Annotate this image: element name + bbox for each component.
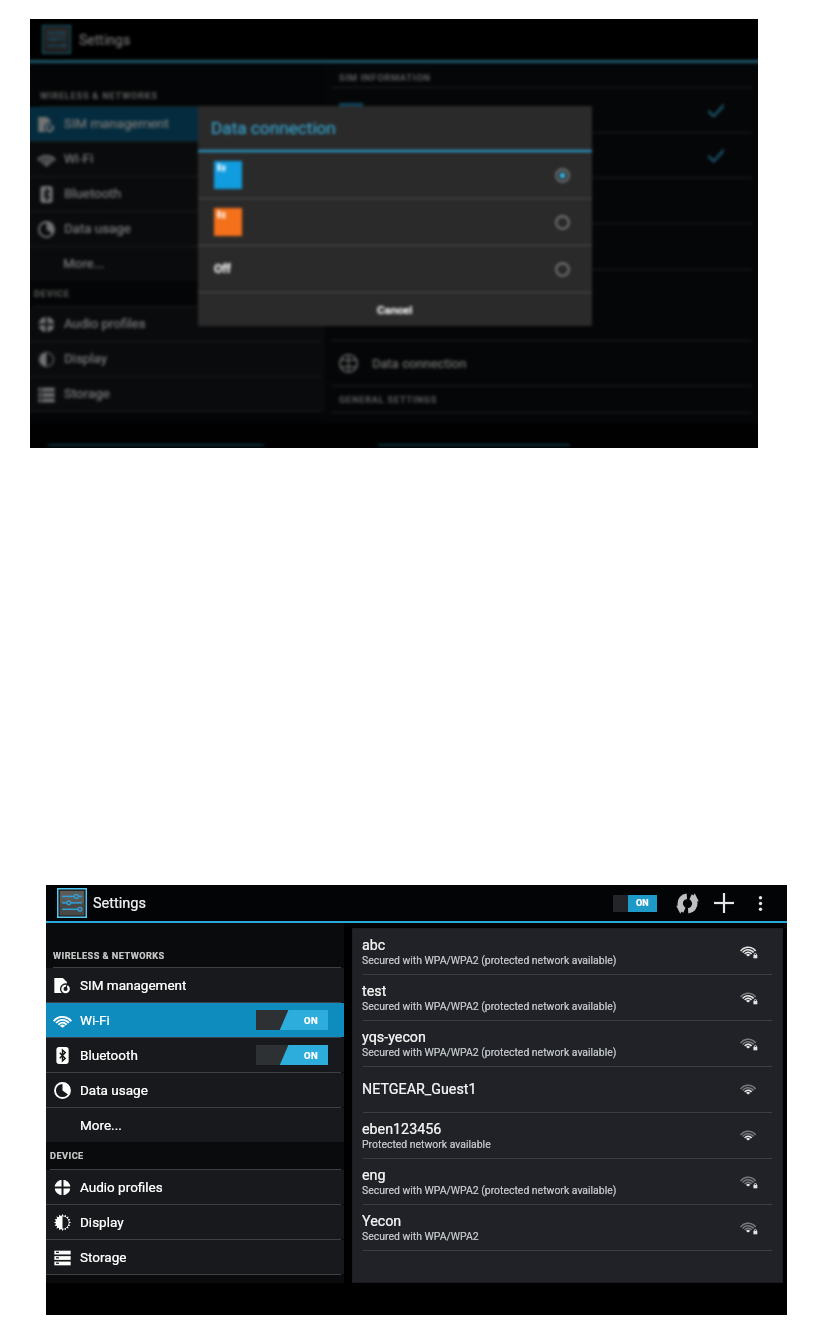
button[interactable]: More options — [745, 888, 775, 918]
staticText: SIM INFORMATION — [339, 72, 431, 83]
button[interactable]: NETGEAR_Guest1 — [353, 1067, 782, 1112]
staticText: Secured with WPA/WPA2 (protected network… — [362, 954, 617, 966]
button[interactable]: Off — [198, 246, 592, 292]
button[interactable]: More... — [46, 1108, 344, 1142]
button[interactable]: Data usage — [46, 1073, 344, 1107]
button[interactable]: SIM management — [46, 968, 344, 1002]
staticText: Wi-Fi — [64, 151, 94, 167]
button[interactable]: eng — [353, 1159, 782, 1204]
staticText: Audio profiles — [64, 316, 146, 332]
staticText: Audio profiles — [80, 1179, 163, 1195]
staticText: test — [362, 983, 387, 1000]
staticText: Settings — [79, 32, 131, 48]
button[interactable]: SIM card — [325, 133, 758, 177]
staticText: ON — [304, 1015, 319, 1026]
button[interactable]: WPS — [672, 888, 702, 918]
button[interactable]: Display — [46, 1205, 344, 1239]
staticText: WIRELESS & NETWORKS — [40, 90, 158, 101]
button[interactable]: Wi-Fi — [30, 142, 325, 176]
staticText: ON — [636, 898, 649, 909]
button[interactable]: Audio profiles — [46, 1170, 344, 1204]
staticText: Data usage — [80, 1082, 148, 1098]
button[interactable]: SIM 1 — [198, 152, 592, 198]
staticText: Secured with WPA/WPA2 — [362, 1230, 479, 1242]
staticText: yqs-yecon — [362, 1029, 426, 1046]
staticText: SIM management — [80, 977, 187, 993]
button[interactable]: Data connection — [325, 341, 758, 385]
button[interactable]: Audio profiles — [30, 307, 325, 341]
button[interactable]: SIM card — [325, 88, 758, 132]
staticText: Storage — [80, 1249, 127, 1265]
staticText: Secured with WPA/WPA2 (protected network… — [362, 1000, 617, 1012]
staticText: Settings — [93, 895, 146, 912]
staticText: Data usage — [64, 221, 131, 237]
staticText: DEVICE — [34, 288, 70, 299]
button[interactable]: SIM management — [30, 107, 325, 141]
button[interactable]: Storage — [46, 1240, 344, 1274]
staticText: Protected network available — [362, 1138, 491, 1150]
staticText: Off — [214, 262, 231, 276]
staticText: Bluetooth — [64, 186, 121, 202]
staticText: Data connection — [372, 356, 467, 371]
button[interactable]: More... — [30, 247, 325, 281]
button[interactable]: Bluetooth — [30, 177, 325, 211]
staticText: SIM management — [64, 116, 169, 132]
button[interactable]: eben123456 — [353, 1113, 782, 1158]
staticText: DEVICE — [50, 1150, 84, 1161]
staticText: WIRELESS & NETWORKS — [53, 950, 165, 961]
button[interactable]: Wi-Fi on/off — [613, 895, 657, 912]
staticText: Storage — [64, 386, 110, 402]
staticText: abc — [362, 937, 386, 954]
staticText: eng — [362, 1167, 386, 1184]
button[interactable]: Data usage — [30, 212, 325, 246]
button[interactable]: test — [353, 975, 782, 1020]
button[interactable]: Add network — [709, 888, 739, 918]
staticText: Bluetooth — [80, 1047, 138, 1063]
staticText: Data connection — [211, 118, 336, 138]
staticText: NETGEAR_Guest1 — [362, 1081, 477, 1098]
button[interactable]: yqs-yecon — [353, 1021, 782, 1066]
button[interactable]: Display — [30, 342, 325, 376]
staticText: eben123456 — [362, 1121, 442, 1138]
button[interactable]: Bluetooth — [46, 1038, 344, 1072]
button[interactable]: Yecon — [353, 1205, 782, 1250]
button[interactable]: Wi-Fi — [46, 1003, 344, 1037]
staticText: Display — [64, 351, 107, 367]
staticText: Display — [80, 1214, 124, 1230]
staticText: Cancel — [377, 303, 413, 316]
staticText: More... — [80, 1117, 122, 1133]
staticText: Secured with WPA/WPA2 (protected network… — [362, 1046, 617, 1058]
staticText: Yecon — [362, 1213, 402, 1230]
staticText: More... — [63, 256, 105, 272]
staticText: GENERAL SETTINGS — [339, 394, 438, 405]
button[interactable]: SIM 2 — [198, 199, 592, 245]
staticText: ON — [304, 1050, 319, 1061]
staticText: Secured with WPA/WPA2 (protected network… — [362, 1184, 617, 1196]
staticText: Wi-Fi — [80, 1012, 110, 1028]
button[interactable]: abc — [353, 929, 782, 974]
button[interactable]: Storage — [30, 377, 325, 411]
